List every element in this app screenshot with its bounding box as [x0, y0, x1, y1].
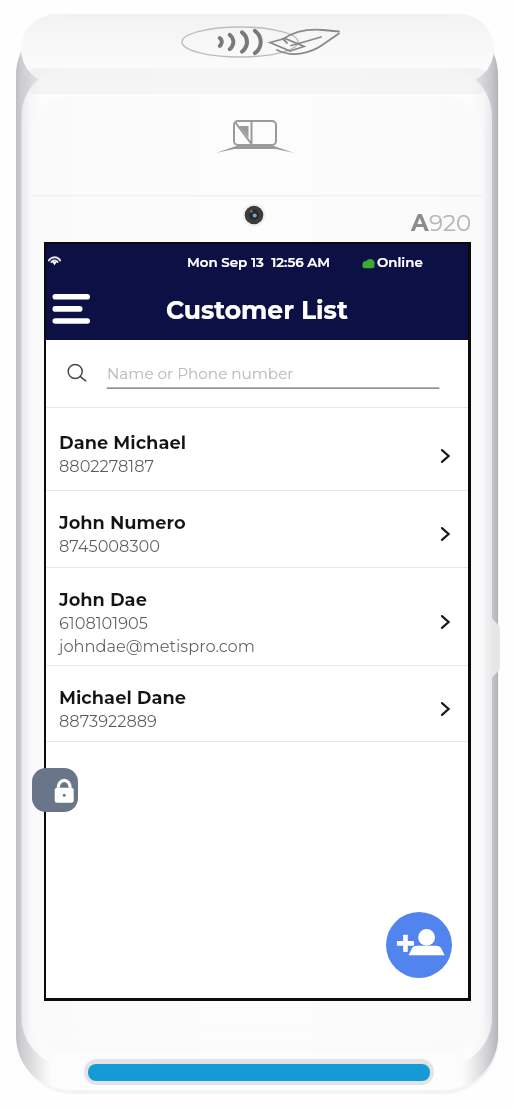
staticText: 6108101905: [59, 613, 148, 633]
staticText: Michael Dane: [59, 687, 187, 709]
staticText: John Dae: [59, 589, 147, 611]
button[interactable]: John Dae: [46, 568, 468, 665]
button[interactable]: Lock screen: [32, 768, 78, 812]
staticText: 8873922889: [59, 711, 157, 731]
staticText: Dane Michael: [59, 432, 187, 454]
button[interactable]: Michael Dane: [46, 666, 468, 741]
staticText: 8802278187: [59, 456, 154, 476]
staticText: John Numero: [59, 512, 186, 534]
staticText: Online: [377, 254, 423, 270]
staticText: Name or Phone number: [107, 364, 294, 383]
button[interactable]: Dane Michael: [46, 408, 468, 490]
staticText: 8745008300: [59, 536, 160, 556]
staticText: A: [411, 209, 429, 237]
staticText: johndae@metispro.com: [59, 636, 255, 656]
button[interactable]: Open navigation menu: [46, 285, 98, 337]
staticText: 920: [429, 209, 472, 237]
button[interactable]: Add customer: [386, 912, 452, 978]
staticText: Customer List: [166, 295, 348, 325]
staticText: Mon Sep 13 12:56 AM: [187, 254, 331, 270]
button[interactable]: Name or Phone number: [46, 340, 468, 407]
button[interactable]: John Numero: [46, 491, 468, 567]
